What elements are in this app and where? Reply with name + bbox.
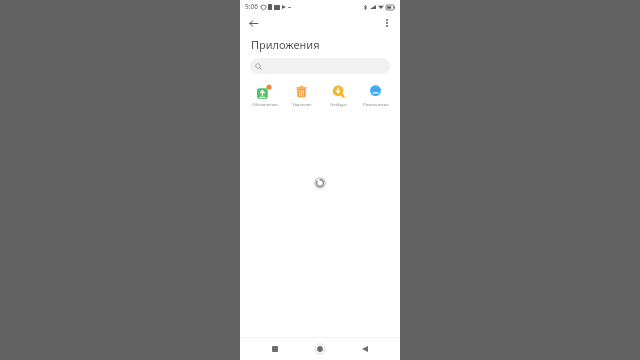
button[interactable]: Search [250, 58, 390, 74]
button[interactable]: Home [310, 339, 330, 359]
staticText: Удаление [292, 102, 312, 108]
button[interactable]: Back [355, 339, 375, 359]
button[interactable]: GetApps [320, 83, 357, 109]
button[interactable]: Recents [265, 339, 285, 359]
button[interactable]: More options [378, 14, 396, 32]
staticText: Обновления [252, 102, 278, 108]
staticText: Приложения [251, 37, 320, 52]
staticText: Разрешения [363, 102, 389, 108]
staticText: GetApps [330, 102, 347, 108]
button[interactable]: Обновления [246, 83, 283, 109]
button[interactable]: Удаление [283, 83, 320, 109]
staticText: 9:06 [245, 2, 258, 11]
button[interactable]: Разрешения [357, 83, 394, 109]
button[interactable]: Back [244, 14, 262, 32]
